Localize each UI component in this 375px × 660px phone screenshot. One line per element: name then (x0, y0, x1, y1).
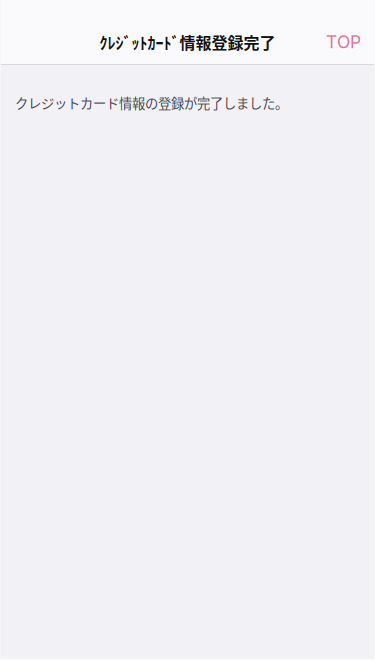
staticText: ｸﾚｼﾞｯﾄｶｰﾄﾞ情報登録完了 (99, 30, 275, 54)
button[interactable]: TOP (312, 20, 375, 63)
staticText: TOP (326, 31, 361, 52)
staticText: クレジットカード情報の登録が完了しました。 (15, 93, 288, 112)
